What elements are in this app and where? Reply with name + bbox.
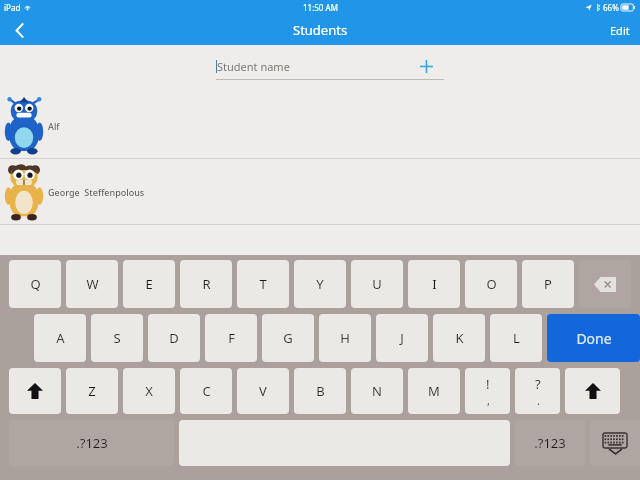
staticText: T bbox=[259, 275, 267, 293]
staticText: A bbox=[56, 329, 65, 347]
staticText: Z bbox=[88, 382, 96, 400]
button[interactable]: Shift bbox=[9, 368, 61, 414]
button[interactable]: Question mark bbox=[515, 368, 560, 414]
button[interactable]: T bbox=[237, 260, 289, 308]
button[interactable]: W bbox=[66, 260, 118, 308]
staticText: I bbox=[432, 275, 437, 293]
button[interactable]: R bbox=[180, 260, 232, 308]
staticText: Students bbox=[293, 21, 348, 39]
button[interactable]: Y bbox=[294, 260, 346, 308]
staticText: R bbox=[202, 275, 211, 293]
staticText: Done bbox=[576, 329, 612, 348]
button[interactable]: H bbox=[319, 314, 371, 362]
staticText: Q bbox=[30, 275, 41, 293]
button[interactable]: S bbox=[91, 314, 143, 362]
button[interactable]: N bbox=[351, 368, 403, 414]
staticText: 11:50 AM bbox=[303, 2, 338, 13]
staticText: Student name bbox=[217, 59, 290, 74]
button[interactable]: M bbox=[408, 368, 460, 414]
button[interactable]: J bbox=[376, 314, 428, 362]
button[interactable]: Q bbox=[9, 260, 61, 308]
button[interactable]: Add student bbox=[416, 56, 436, 76]
button[interactable]: B bbox=[294, 368, 346, 414]
staticText: P bbox=[544, 275, 552, 293]
staticText: C bbox=[202, 382, 211, 400]
staticText: V bbox=[259, 382, 267, 400]
button[interactable]: P bbox=[522, 260, 574, 308]
staticText: ! bbox=[486, 375, 490, 393]
staticText: .?123 bbox=[76, 434, 108, 452]
button[interactable]: Edit bbox=[610, 15, 630, 45]
staticText: D bbox=[169, 329, 179, 347]
staticText: S bbox=[113, 329, 121, 347]
staticText: George Steffenpolous bbox=[48, 186, 145, 198]
button[interactable]: Shift bbox=[565, 368, 620, 414]
button[interactable]: Back bbox=[0, 15, 40, 45]
staticText: H bbox=[340, 329, 350, 347]
button[interactable]: George Steffenpolous bbox=[0, 159, 640, 224]
staticText: L bbox=[513, 329, 520, 347]
staticText: 66% bbox=[603, 2, 619, 13]
button[interactable]: I bbox=[408, 260, 460, 308]
button[interactable]: K bbox=[433, 314, 485, 362]
button[interactable]: .?123 bbox=[9, 420, 174, 466]
button[interactable]: U bbox=[351, 260, 403, 308]
staticText: ? bbox=[535, 375, 541, 393]
staticText: .?123 bbox=[534, 434, 566, 452]
staticText: iPad bbox=[4, 2, 21, 13]
button[interactable]: X bbox=[123, 368, 175, 414]
staticText: U bbox=[372, 275, 382, 293]
button[interactable]: .?123 bbox=[515, 420, 585, 466]
button[interactable]: L bbox=[490, 314, 542, 362]
button[interactable]: F bbox=[205, 314, 257, 362]
button[interactable]: Done bbox=[547, 314, 640, 362]
button[interactable]: G bbox=[262, 314, 314, 362]
button[interactable]: D bbox=[148, 314, 200, 362]
button[interactable]: Alf bbox=[0, 93, 640, 158]
button[interactable]: Z bbox=[66, 368, 118, 414]
staticText: J bbox=[400, 329, 404, 347]
staticText: E bbox=[145, 275, 153, 293]
staticText: B bbox=[316, 382, 325, 400]
button[interactable]: Backspace bbox=[579, 260, 631, 308]
staticText: Edit bbox=[610, 23, 630, 38]
staticText: X bbox=[145, 382, 153, 400]
button[interactable]: E bbox=[123, 260, 175, 308]
staticText: Y bbox=[316, 275, 324, 293]
button[interactable]: C bbox=[180, 368, 232, 414]
staticText: N bbox=[372, 382, 382, 400]
staticText: W bbox=[86, 275, 99, 293]
staticText: O bbox=[486, 275, 497, 293]
staticText: , bbox=[487, 393, 490, 408]
staticText: K bbox=[455, 329, 464, 347]
button[interactable]: V bbox=[237, 368, 289, 414]
button[interactable]: O bbox=[465, 260, 517, 308]
staticText: . bbox=[537, 393, 540, 408]
button[interactable]: Exclamation bbox=[465, 368, 510, 414]
staticText: Alf bbox=[48, 120, 60, 132]
staticText: G bbox=[283, 329, 293, 347]
button[interactable]: A bbox=[34, 314, 86, 362]
staticText: F bbox=[228, 329, 235, 347]
button[interactable]: Hide keyboard bbox=[590, 420, 640, 466]
staticText: M bbox=[428, 382, 440, 400]
